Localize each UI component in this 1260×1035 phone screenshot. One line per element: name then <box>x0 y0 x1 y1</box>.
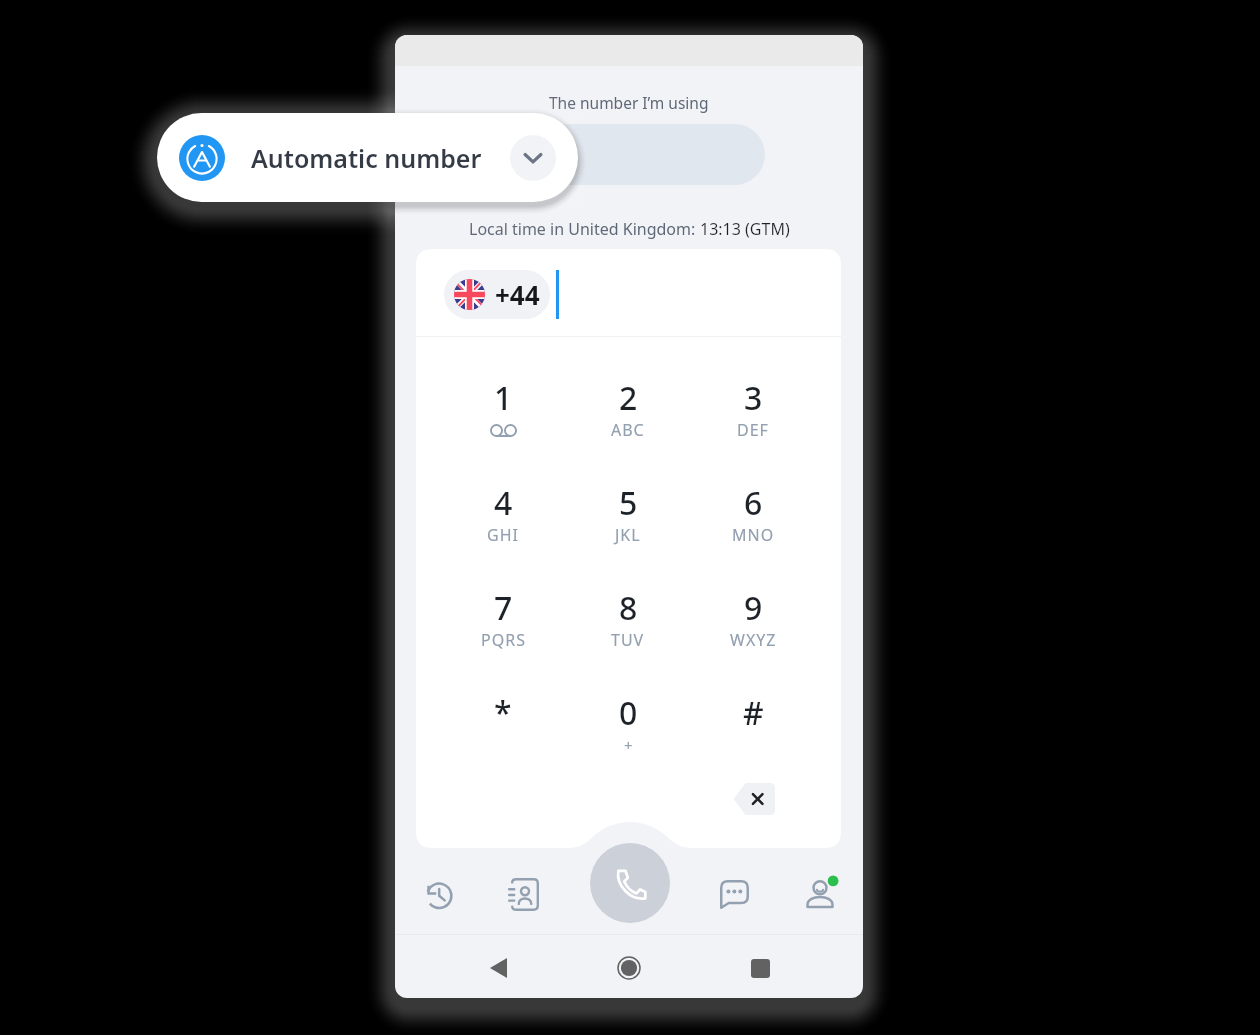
button[interactable]: Messages <box>694 860 774 928</box>
staticText: +44 <box>495 277 540 312</box>
staticText: MNO <box>732 524 775 546</box>
button[interactable]: * <box>441 664 565 764</box>
button[interactable]: 8 <box>566 559 690 659</box>
staticText: 9 <box>744 586 763 630</box>
button[interactable]: 4 <box>441 454 565 554</box>
button[interactable]: 9 <box>691 559 815 659</box>
staticText: TUV <box>611 629 645 651</box>
staticText: 4 <box>494 481 513 525</box>
button[interactable]: 2 <box>566 349 690 449</box>
button[interactable]: 7 <box>441 559 565 659</box>
staticText: Local time in United Kingdom: <box>469 218 700 240</box>
button[interactable]: 5 <box>566 454 690 554</box>
staticText: 2 <box>619 376 638 420</box>
button[interactable]: 0 <box>566 664 690 764</box>
staticText: 13:13 (GTM) <box>700 218 790 240</box>
staticText: 1 <box>494 376 513 420</box>
staticText: 6 <box>744 481 763 525</box>
button[interactable]: Call <box>590 843 670 923</box>
staticText: 5 <box>619 481 638 525</box>
staticText: PQRS <box>481 629 526 651</box>
button[interactable]: 3 <box>691 349 815 449</box>
staticText: ABC <box>611 419 645 441</box>
staticText: WXYZ <box>730 629 777 651</box>
button[interactable]: +44 <box>444 270 550 319</box>
button[interactable]: Home <box>609 948 649 988</box>
staticText: 8 <box>619 586 638 630</box>
button[interactable]: 1 <box>441 349 565 449</box>
staticText: + <box>624 735 633 755</box>
button[interactable]: Contacts <box>483 860 563 928</box>
staticText: * <box>494 691 512 735</box>
button[interactable]: Back <box>478 948 518 988</box>
button[interactable]: Backspace <box>732 783 775 815</box>
staticText: 7 <box>494 586 513 630</box>
staticText: Automatic number <box>251 141 482 175</box>
staticText: The number I’m using <box>549 92 709 113</box>
staticText: DEF <box>737 419 769 441</box>
button[interactable]: Expand <box>510 135 556 181</box>
button[interactable]: Recents <box>398 860 478 928</box>
staticText: 0 <box>619 691 638 735</box>
button[interactable]: # <box>691 664 815 764</box>
staticText: JKL <box>615 524 641 546</box>
staticText: # <box>743 691 764 735</box>
button[interactable]: 6 <box>691 454 815 554</box>
button[interactable] <box>490 124 765 185</box>
button[interactable]: Automatic number <box>157 113 578 202</box>
button[interactable]: Recent apps <box>740 948 780 988</box>
button[interactable]: Profile <box>780 860 860 928</box>
staticText: 3 <box>744 376 763 420</box>
staticText: GHI <box>487 524 519 546</box>
